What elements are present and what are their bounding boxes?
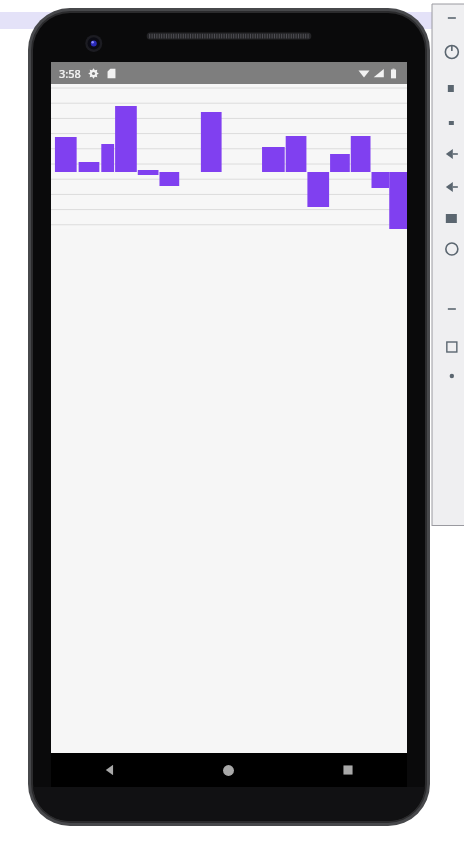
button[interactable]: Home [169, 753, 288, 787]
button[interactable]: Recent apps [288, 753, 407, 787]
staticText: 3:58 [59, 66, 81, 81]
button[interactable]: Back [51, 753, 169, 787]
button[interactable] [51, 84, 407, 229]
